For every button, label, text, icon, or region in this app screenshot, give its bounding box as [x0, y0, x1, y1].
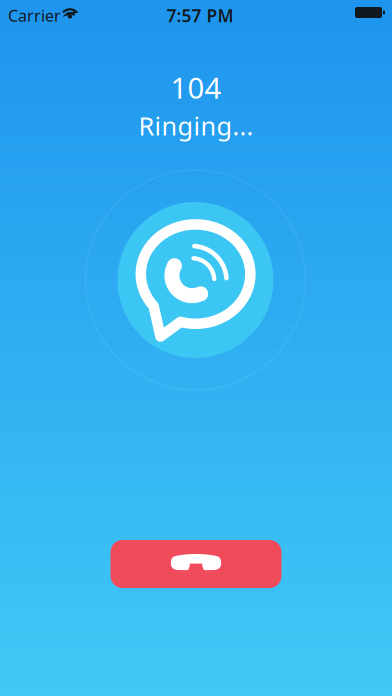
staticText: Carrier	[8, 5, 61, 26]
staticText: Ringing...	[138, 109, 253, 143]
staticText: 104	[170, 68, 221, 107]
button[interactable]: End call	[110, 540, 281, 588]
staticText: 7:57 PM	[166, 4, 233, 27]
